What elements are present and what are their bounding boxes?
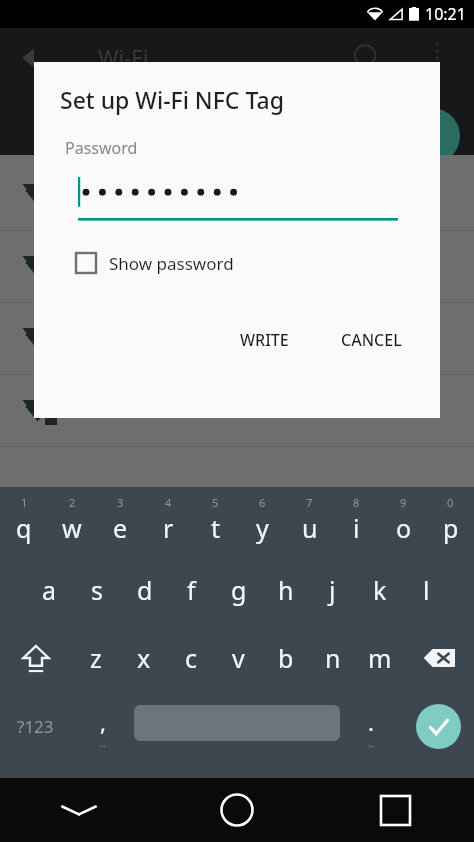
button[interactable]: Recent apps <box>316 778 474 842</box>
staticText: h <box>278 573 294 607</box>
staticText: b <box>278 641 294 675</box>
button[interactable]: m <box>356 625 403 691</box>
staticText: o <box>396 511 412 545</box>
staticText: Password <box>65 137 138 159</box>
button[interactable]: 4 <box>144 489 192 555</box>
button[interactable]: Period <box>340 693 402 759</box>
button[interactable]: l <box>403 557 450 623</box>
button[interactable]: ?123 <box>0 693 71 759</box>
staticText: 5 <box>212 495 219 510</box>
staticText: a <box>42 573 57 607</box>
staticText: c <box>185 641 198 675</box>
staticText: e <box>113 511 128 545</box>
staticText: x <box>137 641 151 675</box>
staticText: m <box>368 641 392 675</box>
staticText: Saved, secured with WPA2 <box>98 400 283 420</box>
button[interactable]: Saved, secured with WPA2 <box>0 375 474 447</box>
button[interactable]: Home <box>158 778 316 842</box>
button[interactable]: Comma <box>71 693 134 759</box>
staticText: . <box>368 707 374 737</box>
staticText: g <box>231 573 247 607</box>
staticText: 9 <box>400 495 407 510</box>
button[interactable]: Show password <box>76 245 234 281</box>
button[interactable]: 7 <box>286 489 333 555</box>
button[interactable]: Shift <box>0 625 72 691</box>
staticText: d <box>137 573 153 607</box>
button[interactable] <box>0 303 474 375</box>
staticText: 6 <box>259 495 266 510</box>
staticText: Show password <box>109 252 234 275</box>
button[interactable]: d <box>121 557 168 623</box>
button[interactable]: n <box>309 625 356 691</box>
button[interactable]: Hide keyboard <box>0 778 158 842</box>
staticText: 10:21 <box>425 3 466 25</box>
staticText: ... <box>99 738 106 749</box>
button[interactable]: 5 <box>192 489 239 555</box>
button[interactable]: Backspace <box>403 625 474 691</box>
staticText: CANCEL <box>341 329 402 351</box>
button[interactable]: 9 <box>380 489 427 555</box>
button[interactable]: WRITE <box>226 319 303 361</box>
button[interactable]: g <box>215 557 262 623</box>
button[interactable]: 2 <box>48 489 96 555</box>
button[interactable]: j <box>309 557 356 623</box>
staticText: 3 <box>117 495 124 510</box>
button[interactable]: z <box>72 625 120 691</box>
staticText: f <box>187 573 196 607</box>
button[interactable] <box>0 159 474 231</box>
button[interactable]: 3 <box>96 489 144 555</box>
button[interactable]: Navigate up <box>10 38 50 78</box>
staticText: q <box>16 511 32 545</box>
staticText: k <box>373 573 387 607</box>
button[interactable]: 8 <box>333 489 380 555</box>
button[interactable]: b <box>262 625 309 691</box>
staticText: p <box>443 511 459 545</box>
staticText: Wi-Fi <box>98 42 149 72</box>
button[interactable]: Enter <box>402 693 474 759</box>
button[interactable]: CANCEL <box>327 319 416 361</box>
button[interactable]: c <box>168 625 215 691</box>
staticText: z <box>90 641 102 675</box>
button[interactable] <box>0 231 474 303</box>
button[interactable]: x <box>120 625 168 691</box>
button[interactable]: a <box>25 557 73 623</box>
staticText: y <box>256 511 269 545</box>
staticText: Set up Wi-Fi NFC Tag <box>60 84 284 115</box>
button[interactable]: s <box>73 557 121 623</box>
staticText: 1 <box>21 495 28 510</box>
staticText: s <box>91 573 103 607</box>
button[interactable]: 1 <box>0 489 48 555</box>
staticText: j <box>329 573 336 607</box>
button[interactable] <box>78 173 398 221</box>
staticText: 8 <box>353 495 360 510</box>
button[interactable]: k <box>356 557 403 623</box>
staticText: WRITE <box>240 329 289 351</box>
staticText: l <box>423 573 430 607</box>
button[interactable]: v <box>215 625 262 691</box>
staticText: 7 <box>306 495 313 510</box>
staticText: t <box>211 511 221 545</box>
staticText: w <box>62 511 82 545</box>
staticText: 4 <box>165 495 172 510</box>
staticText: , <box>100 707 106 737</box>
staticText: v <box>232 641 245 675</box>
staticText: 0 <box>447 495 454 510</box>
staticText: ... <box>368 738 375 749</box>
staticText: r <box>163 511 174 545</box>
staticText: ?123 <box>17 715 54 738</box>
staticText: i <box>353 511 360 545</box>
staticText: n <box>325 641 341 675</box>
button[interactable]: 0 <box>427 489 474 555</box>
staticText: u <box>302 511 318 545</box>
button[interactable]: h <box>262 557 309 623</box>
staticText: 2 <box>69 495 76 510</box>
button[interactable]: f <box>168 557 215 623</box>
button[interactable]: 6 <box>239 489 286 555</box>
